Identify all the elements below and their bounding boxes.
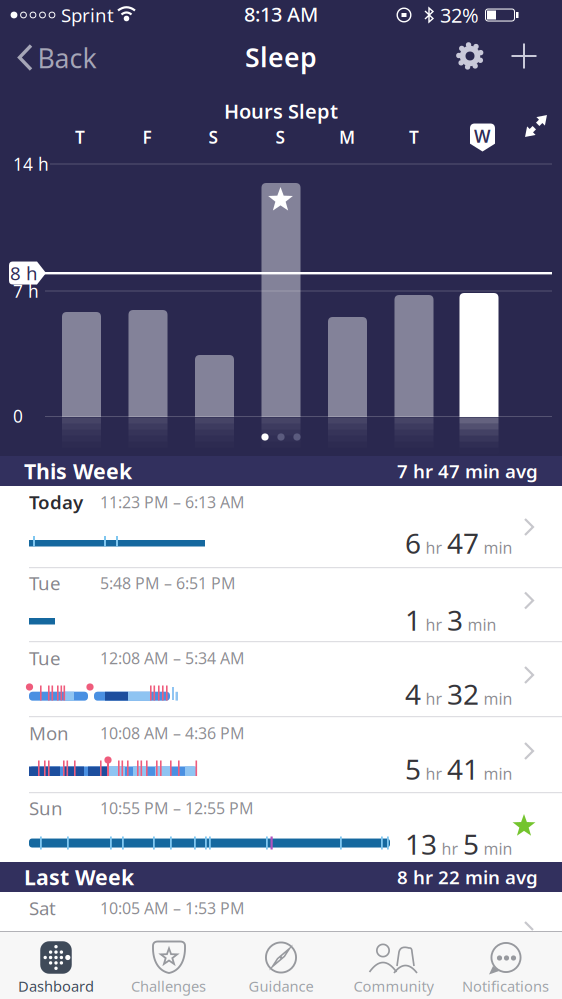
button[interactable]: Settings <box>448 34 492 78</box>
staticText: Notifications <box>462 976 549 996</box>
staticText: S <box>208 125 218 148</box>
button[interactable]: Expand chart <box>516 106 556 146</box>
staticText: M <box>339 125 355 148</box>
staticText: 8:13 AM <box>244 1 318 27</box>
staticText: 8 hr 22 min avg <box>397 865 538 889</box>
staticText: Tue <box>29 571 61 595</box>
staticText: This Week <box>24 457 132 485</box>
staticText: hr <box>425 763 442 784</box>
staticText: T <box>75 125 85 148</box>
button[interactable]: Today, 11:23 PM to 6:13 AM, 6 hours 47 m… <box>0 486 562 568</box>
staticText: 13 <box>405 825 437 863</box>
staticText: 5 <box>463 825 479 863</box>
staticText: 3 <box>447 601 463 639</box>
staticText: 10:05 AM – 1:53 PM <box>100 897 245 919</box>
staticText: Sat <box>29 896 56 920</box>
staticText: 5:48 PM – 6:51 PM <box>100 572 236 594</box>
staticText: Today <box>29 490 83 514</box>
button[interactable]: Wednesday <box>470 123 495 153</box>
staticText: hr <box>441 838 458 859</box>
staticText: min <box>483 763 512 784</box>
staticText: Tue <box>29 646 61 670</box>
button[interactable]: Tuesday, 5:48 PM to 6:51 PM, 1 hour 3 mi… <box>0 568 562 642</box>
staticText: 32% <box>440 2 479 28</box>
staticText: Back <box>37 40 96 76</box>
button[interactable]: Notifications <box>449 931 561 999</box>
staticText: Sun <box>29 796 63 820</box>
staticText: 0 <box>13 404 23 427</box>
staticText: 41 <box>447 750 479 788</box>
button[interactable]: Monday, 10:08 AM to 4:36 PM, 5 hours 41 … <box>0 717 562 793</box>
staticText: 12:08 AM – 5:34 AM <box>100 647 245 669</box>
button[interactable]: Add <box>503 35 545 77</box>
staticText: 10:08 AM – 4:36 PM <box>100 722 245 744</box>
staticText: Guidance <box>248 976 313 996</box>
staticText: 5 <box>405 750 421 788</box>
staticText: T <box>409 125 419 148</box>
button[interactable]: Guidance <box>225 931 337 999</box>
staticText: min <box>483 537 512 558</box>
staticText: Community <box>353 976 433 996</box>
staticText: 6 <box>405 524 421 562</box>
staticText: min <box>483 838 512 859</box>
staticText: W <box>474 124 491 147</box>
staticText: 32 <box>447 675 479 713</box>
staticText: Challenges <box>131 976 206 996</box>
button[interactable]: Saturday, 10:05 AM to 1:53 PM <box>0 887 562 931</box>
staticText: Mon <box>29 721 69 745</box>
staticText: 1 <box>405 601 421 639</box>
staticText: 10:55 PM – 12:55 PM <box>100 797 254 819</box>
staticText: hr <box>425 688 442 709</box>
button[interactable]: Tuesday, 12:08 AM to 5:34 AM, 4 hours 32… <box>0 642 562 717</box>
staticText: F <box>142 125 151 148</box>
staticText: 47 <box>447 524 479 562</box>
button[interactable]: Sunday, 10:55 PM to 12:55 PM, 13 hours 5… <box>0 793 562 862</box>
staticText: Sprint <box>61 3 114 27</box>
staticText: min <box>467 614 496 635</box>
staticText: S <box>275 125 285 148</box>
staticText: Hours Slept <box>224 98 338 124</box>
staticText: Dashboard <box>18 976 94 996</box>
button[interactable]: Dashboard <box>0 931 112 999</box>
staticText: 11:23 PM – 6:13 AM <box>100 491 245 513</box>
staticText: Sleep <box>245 39 317 75</box>
staticText: hr <box>425 614 442 635</box>
button[interactable]: Community <box>337 931 449 999</box>
button[interactable]: Challenges <box>112 931 224 999</box>
staticText: min <box>483 688 512 709</box>
staticText: 7 hr 47 min avg <box>397 459 538 483</box>
staticText: Last Week <box>24 863 134 891</box>
staticText: 14 h <box>13 152 49 175</box>
staticText: 7 h <box>13 279 39 302</box>
button[interactable]: Back <box>14 35 124 79</box>
staticText: hr <box>425 537 442 558</box>
staticText: 8 h <box>10 261 38 285</box>
staticText: 4 <box>405 675 421 713</box>
